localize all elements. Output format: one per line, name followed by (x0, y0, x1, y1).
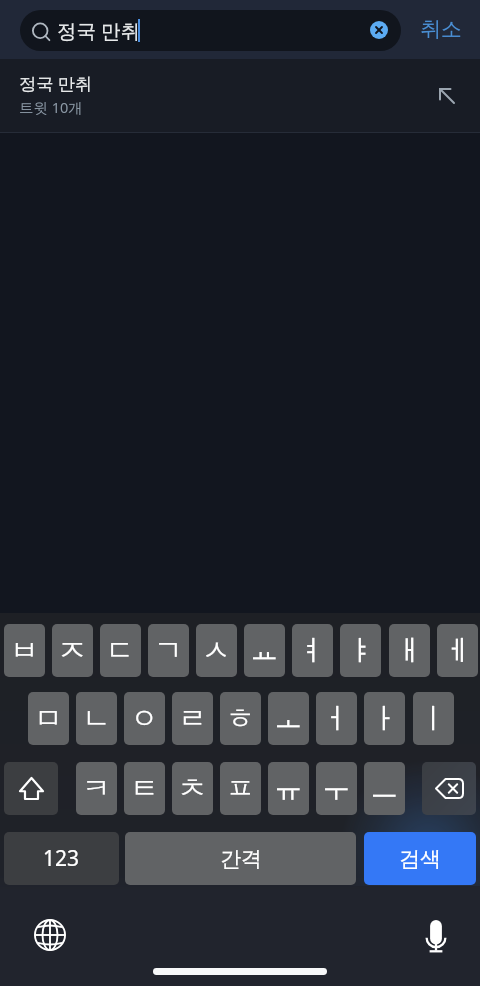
staticText: ㄴ (82, 701, 111, 737)
button[interactable]: ㅈ (52, 624, 93, 677)
staticText: ㅂ (10, 633, 39, 669)
button[interactable]: ㅍ (220, 762, 261, 815)
staticText: 취소 (420, 16, 462, 42)
button[interactable]: ㄹ (172, 692, 213, 745)
staticText: ㅊ (178, 771, 207, 807)
button[interactable]: Change keyboard (34, 919, 66, 951)
button[interactable]: ㄴ (76, 692, 117, 745)
button[interactable]: ㅣ (413, 692, 454, 745)
button[interactable]: Shift (4, 762, 58, 815)
staticText: 간격 (220, 846, 262, 872)
staticText: ㅍ (226, 771, 255, 807)
button[interactable]: 정국 만취 (0, 59, 480, 132)
staticText: ㅁ (34, 701, 63, 737)
staticText: ㅑ (346, 633, 375, 669)
button[interactable]: 123 (4, 832, 119, 885)
button[interactable]: ㅁ (28, 692, 69, 745)
staticText: ㅠ (274, 771, 303, 807)
staticText: ㅜ (322, 771, 351, 807)
staticText: ㅇ (130, 701, 159, 737)
staticText: ㅅ (202, 633, 231, 669)
staticText: 정국 만취 (57, 17, 141, 44)
staticText: 검색 (399, 846, 441, 872)
button[interactable]: Clear text (370, 21, 388, 39)
button[interactable]: ㅂ (4, 624, 45, 677)
button[interactable]: 정국 만취 (20, 10, 401, 51)
button[interactable]: Insert search term (433, 83, 461, 111)
button[interactable]: ㅏ (364, 692, 405, 745)
button[interactable]: ㅎ (220, 692, 261, 745)
button[interactable]: ㅛ (244, 624, 285, 677)
button[interactable]: ㄷ (100, 624, 141, 677)
staticText: ㅕ (298, 633, 327, 669)
button[interactable]: 간격 (125, 832, 356, 885)
button[interactable]: ㅜ (316, 762, 357, 815)
button[interactable]: ㄱ (148, 624, 189, 677)
staticText: ㅛ (250, 633, 279, 669)
staticText: ㅐ (395, 633, 424, 669)
staticText: ㅋ (82, 771, 111, 807)
button[interactable]: ㅠ (268, 762, 309, 815)
staticText: ㅎ (226, 701, 255, 737)
staticText: ㅓ (322, 701, 351, 737)
staticText: ㅡ (370, 771, 399, 807)
button[interactable]: ㅓ (316, 692, 357, 745)
button[interactable]: ㅕ (292, 624, 333, 677)
button[interactable]: ㅡ (364, 762, 405, 815)
button[interactable]: ㅋ (76, 762, 117, 815)
button[interactable]: ㅑ (340, 624, 381, 677)
staticText: ㅣ (419, 701, 448, 737)
button[interactable]: ㅅ (196, 624, 237, 677)
staticText: ㄱ (154, 633, 183, 669)
staticText: ㅈ (58, 633, 87, 669)
button[interactable]: ㅗ (268, 692, 309, 745)
button[interactable]: ㅇ (124, 692, 165, 745)
staticText: ㅏ (370, 701, 399, 737)
staticText: ㅔ (443, 633, 472, 669)
button[interactable]: ㅔ (437, 624, 478, 677)
button[interactable]: 취소 (410, 8, 472, 49)
staticText: ㄹ (178, 701, 207, 737)
button[interactable]: Dictation (419, 920, 453, 954)
button[interactable]: 검색 (364, 832, 476, 885)
staticText: ㅗ (274, 701, 303, 737)
staticText: 정국 만취 (19, 72, 93, 95)
staticText: ㅌ (130, 771, 159, 807)
button[interactable]: ㅌ (124, 762, 165, 815)
button[interactable]: Backspace (422, 762, 476, 815)
staticText: 트윗 10개 (19, 97, 83, 117)
button[interactable]: ㅊ (172, 762, 213, 815)
staticText: 123 (43, 844, 80, 873)
button[interactable]: ㅐ (389, 624, 430, 677)
staticText: ㄷ (106, 633, 135, 669)
